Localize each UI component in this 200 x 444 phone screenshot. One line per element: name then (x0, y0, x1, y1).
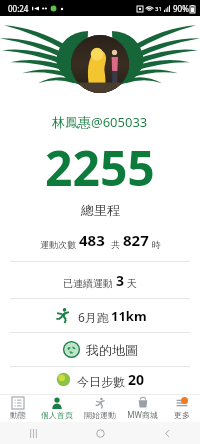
staticText: 今日步數 (77, 374, 125, 389)
button[interactable]: MW商城 (121, 394, 164, 422)
button[interactable]: 6月跑 (0, 299, 200, 332)
staticText: 動態 (10, 410, 26, 420)
button[interactable]: 動態 (0, 394, 35, 422)
staticText: 已連續運動 (63, 277, 113, 290)
staticText: 共 (111, 239, 120, 250)
staticText: 827 (123, 230, 149, 250)
staticText: 更多 (174, 410, 190, 420)
button[interactable]: Back (160, 426, 174, 440)
button[interactable]: Profile photo (71, 35, 129, 93)
staticText: 我的地圖 (86, 342, 138, 358)
staticText: 3 (116, 271, 125, 290)
button[interactable]: 開始運動 (78, 394, 121, 422)
staticText: 11km (111, 307, 147, 325)
staticText: 90% (173, 3, 189, 14)
staticText: 開始運動 (84, 410, 116, 420)
staticText: 時 (152, 239, 161, 250)
staticText: 483 (79, 230, 105, 250)
staticText: MW商城 (127, 409, 158, 420)
button[interactable]: Home (93, 426, 107, 440)
button[interactable]: 個人首頁 (35, 394, 78, 422)
staticText: 2255 (45, 135, 155, 200)
staticText: 天 (127, 277, 137, 290)
staticText: 31 (155, 5, 162, 13)
staticText: 20 (128, 370, 145, 389)
staticText: 林鳳惠@605033 (52, 113, 148, 131)
button[interactable]: 今日步數 (0, 367, 200, 391)
button[interactable]: 我的地圖 (0, 333, 200, 366)
staticText: 個人首頁 (41, 410, 73, 420)
staticText: 00:24 (8, 3, 29, 14)
button[interactable]: 更多 (164, 394, 200, 422)
staticText: 總里程 (81, 202, 120, 218)
button[interactable]: Recent apps (26, 426, 40, 440)
staticText: 6月跑 (78, 309, 109, 325)
staticText: 運動次數 (40, 239, 76, 250)
